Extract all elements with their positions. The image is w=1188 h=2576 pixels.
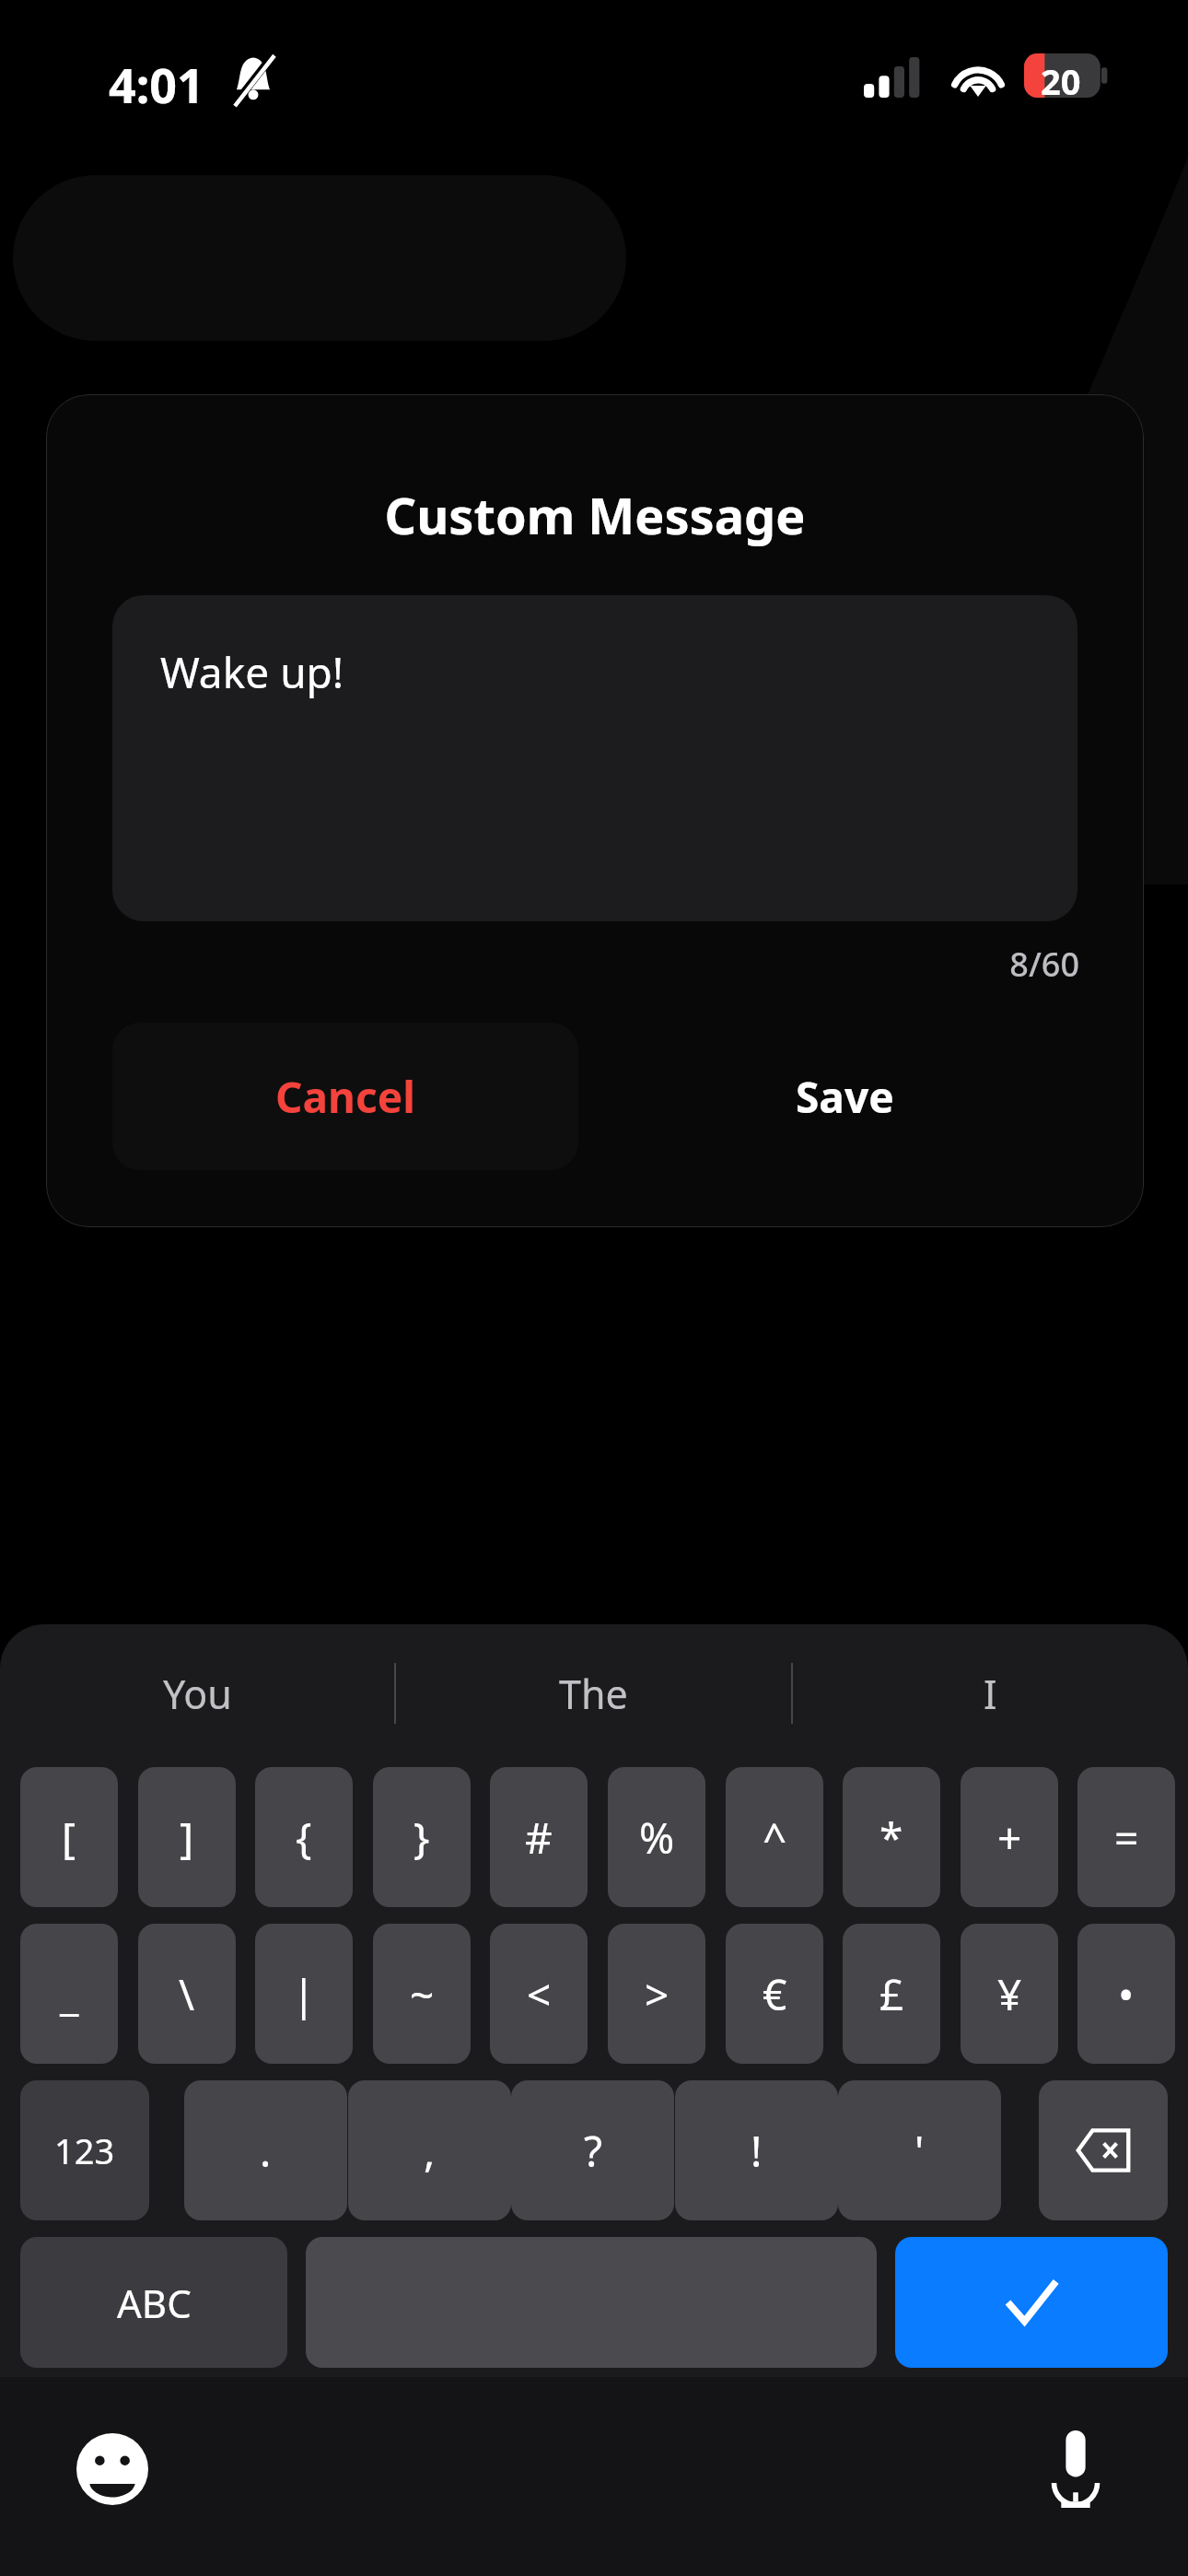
button[interactable]: . xyxy=(184,2080,347,2220)
staticText: \ xyxy=(179,1965,195,2023)
button[interactable]: ^ xyxy=(726,1767,823,1907)
staticText: ~ xyxy=(410,1965,435,2023)
staticText: ¥ xyxy=(997,1965,1022,2023)
button[interactable]: \ xyxy=(138,1924,236,2064)
staticText: | xyxy=(292,1965,316,2023)
staticText: Custom Message xyxy=(46,481,1144,549)
button[interactable]: Cancel xyxy=(112,1023,578,1170)
button[interactable]: = xyxy=(1077,1767,1175,1907)
staticText: The xyxy=(559,1667,628,1721)
button[interactable]: 123 xyxy=(20,2080,149,2220)
staticText: ABC xyxy=(117,2277,192,2329)
staticText: 123 xyxy=(54,2126,115,2174)
staticText: , xyxy=(424,2122,436,2180)
staticText: < xyxy=(527,1965,552,2023)
staticText: ' xyxy=(914,2122,925,2180)
button[interactable]: * xyxy=(843,1767,940,1907)
staticText: # xyxy=(525,1809,553,1867)
staticText: > xyxy=(645,1965,670,2023)
button[interactable]: Voice input xyxy=(1030,2423,1122,2515)
button[interactable]: ~ xyxy=(373,1924,471,2064)
staticText: = xyxy=(1114,1809,1139,1867)
staticText: Save xyxy=(796,1068,894,1126)
staticText: + xyxy=(997,1809,1022,1867)
staticText: £ xyxy=(879,1965,904,2023)
staticText: Wake up! xyxy=(160,643,344,701)
button[interactable]: > xyxy=(608,1924,705,2064)
button[interactable]: € xyxy=(726,1924,823,2064)
staticText: ] xyxy=(180,1809,194,1867)
staticText: } xyxy=(413,1809,430,1867)
button[interactable]: The xyxy=(396,1624,791,1762)
button[interactable]: Emoji xyxy=(66,2423,158,2515)
staticText: ^ xyxy=(763,1809,787,1867)
button[interactable]: ? xyxy=(511,2080,674,2220)
button[interactable]: { xyxy=(255,1767,353,1907)
staticText: • xyxy=(1118,1965,1135,2023)
staticText: 8/60 xyxy=(46,942,1079,987)
button[interactable]: + xyxy=(961,1767,1058,1907)
button[interactable]: £ xyxy=(843,1924,940,2064)
staticText: ! xyxy=(751,2122,763,2180)
staticText: * xyxy=(879,1809,903,1867)
staticText: 20 xyxy=(1041,57,1081,105)
button[interactable]: Backspace xyxy=(1039,2080,1168,2220)
staticText: 4:01 xyxy=(109,52,204,117)
staticText: You xyxy=(163,1667,232,1721)
staticText: I xyxy=(984,1667,997,1721)
button[interactable]: Wake up! xyxy=(112,595,1077,921)
staticText: _ xyxy=(60,1965,79,2023)
staticText: % xyxy=(639,1809,675,1867)
button[interactable]: | xyxy=(255,1924,353,2064)
button[interactable]: [ xyxy=(20,1767,118,1907)
button[interactable]: ] xyxy=(138,1767,236,1907)
button[interactable]: ¥ xyxy=(961,1924,1058,2064)
button[interactable]: You xyxy=(0,1624,394,1762)
staticText: . xyxy=(260,2122,272,2180)
button[interactable]: _ xyxy=(20,1924,118,2064)
button[interactable]: Enter xyxy=(895,2237,1168,2368)
button[interactable]: ! xyxy=(675,2080,838,2220)
button[interactable]: } xyxy=(373,1767,471,1907)
button[interactable]: % xyxy=(608,1767,705,1907)
staticText: Cancel xyxy=(275,1068,415,1126)
button[interactable]: < xyxy=(490,1924,588,2064)
button[interactable]: , xyxy=(348,2080,511,2220)
staticText: ? xyxy=(584,2122,602,2180)
button[interactable]: • xyxy=(1077,1924,1175,2064)
staticText: [ xyxy=(62,1809,76,1867)
staticText: € xyxy=(763,1965,787,2023)
button[interactable]: Save xyxy=(611,1023,1077,1170)
button[interactable]: I xyxy=(793,1624,1188,1762)
button[interactable]: # xyxy=(490,1767,588,1907)
staticText: { xyxy=(296,1809,312,1867)
button[interactable]: ABC xyxy=(20,2237,287,2368)
button[interactable]: ' xyxy=(838,2080,1001,2220)
